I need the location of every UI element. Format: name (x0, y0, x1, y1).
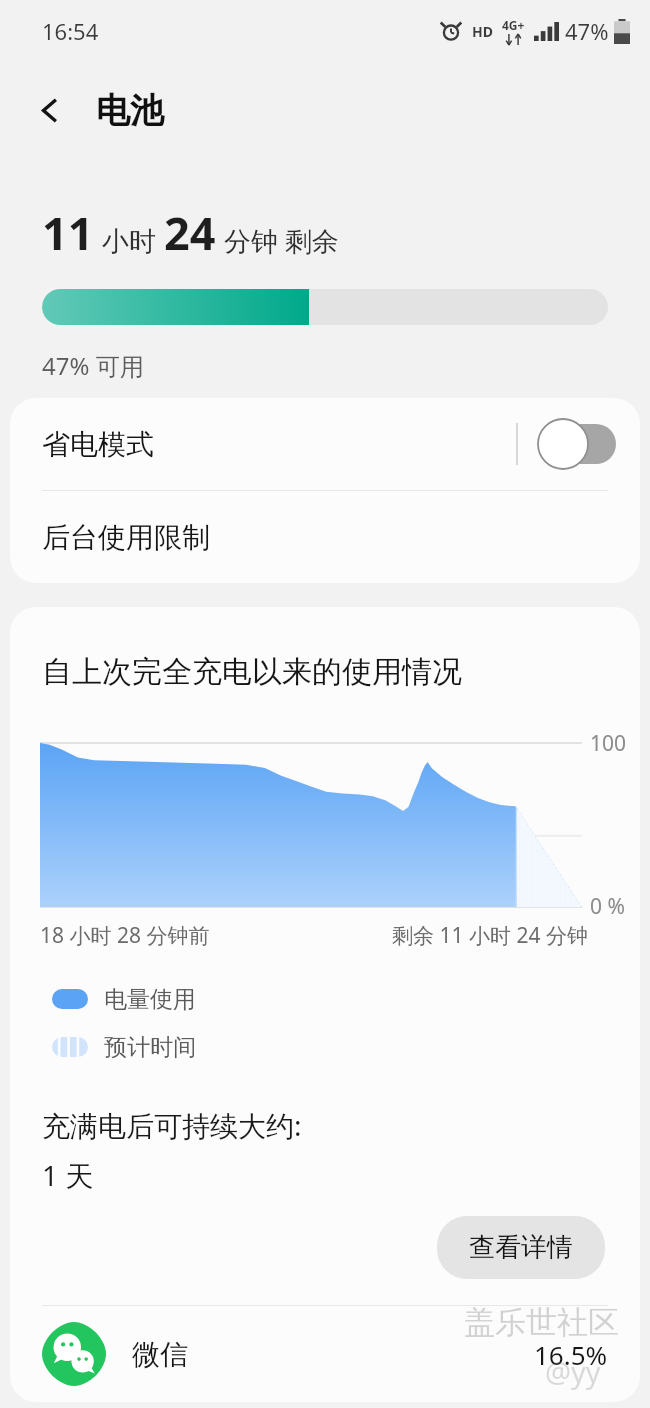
button[interactable]: 预计时间 (52, 1026, 640, 1068)
staticText: 0 % (590, 892, 625, 921)
staticText: 11 (42, 202, 94, 263)
staticText: 电池 (96, 89, 164, 132)
staticText: 盖乐世社区 (464, 1303, 619, 1342)
button[interactable]: 后台使用限制 (10, 491, 640, 583)
button[interactable]: 省电模式 switch, off (538, 419, 616, 469)
button[interactable]: 省电模式 (10, 398, 640, 490)
staticText: 充满电后可持续大约: (42, 1106, 302, 1144)
staticText: HD (472, 22, 493, 41)
staticText: 自上次完全充电以来的使用情况 (42, 653, 462, 691)
staticText: 16.5% (534, 1337, 608, 1372)
staticText: 47% 可用 (42, 349, 144, 382)
staticText: 电量使用 (104, 985, 196, 1014)
staticText: 18 小时 28 分钟前 (40, 921, 210, 950)
button[interactable]: Back (22, 82, 78, 138)
button[interactable]: 查看详情 (437, 1216, 605, 1279)
staticText: 小时 (102, 225, 156, 259)
staticText: 分钟 剩余 (224, 222, 340, 259)
staticText: 47% (565, 16, 609, 46)
staticText: 省电模式 (42, 427, 516, 462)
staticText: @yy (545, 1352, 601, 1391)
staticText: 剩余 11 小时 24 分钟 (392, 921, 588, 950)
staticText: 4G+ (502, 17, 525, 33)
staticText: 预计时间 (104, 1033, 196, 1062)
staticText: 16:54 (42, 16, 99, 46)
staticText: 后台使用限制 (42, 520, 210, 555)
button[interactable]: 电量使用 (52, 978, 640, 1020)
button[interactable]: 微信 (10, 1306, 640, 1402)
staticText: 24 (164, 202, 216, 263)
staticText: 微信 (132, 1337, 188, 1372)
staticText: 查看详情 (469, 1231, 573, 1264)
staticText: 100 (590, 729, 627, 758)
staticText: 1 天 (42, 1156, 94, 1194)
